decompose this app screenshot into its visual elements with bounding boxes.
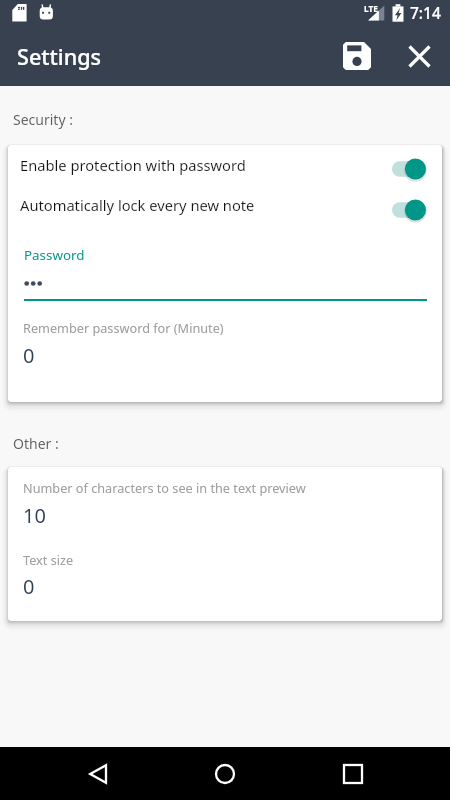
staticText: 7:14 [410, 2, 441, 23]
staticText: Security : [13, 110, 73, 129]
button[interactable]: Close [395, 32, 443, 80]
button[interactable]: Back [78, 754, 118, 794]
button[interactable]: Enable protection with password [8, 148, 442, 190]
staticText: Other : [13, 434, 59, 453]
staticText: Settings [17, 42, 102, 71]
staticText: Enable protection with password [20, 155, 246, 175]
staticText: LTE [364, 3, 378, 14]
button[interactable]: Automatically lock every new note [8, 189, 442, 231]
button[interactable]: Password [8, 238, 442, 304]
button[interactable]: Text size [8, 545, 442, 601]
button[interactable]: Save [333, 32, 381, 80]
staticText: Automatically lock every new note [20, 195, 255, 215]
staticText: Text size [23, 551, 74, 568]
button[interactable]: Number of characters to see in the text … [8, 473, 442, 529]
button[interactable]: Remember password for (Minute) [8, 313, 442, 369]
staticText: 0 [23, 342, 35, 369]
button[interactable]: Home [205, 754, 245, 794]
staticText: Remember password for (Minute) [23, 319, 224, 336]
button[interactable]: Recents [333, 754, 373, 794]
staticText: 0 [23, 573, 35, 600]
staticText: Number of characters to see in the text … [23, 479, 306, 496]
staticText: 10 [23, 502, 46, 529]
staticText: Password [24, 246, 85, 264]
